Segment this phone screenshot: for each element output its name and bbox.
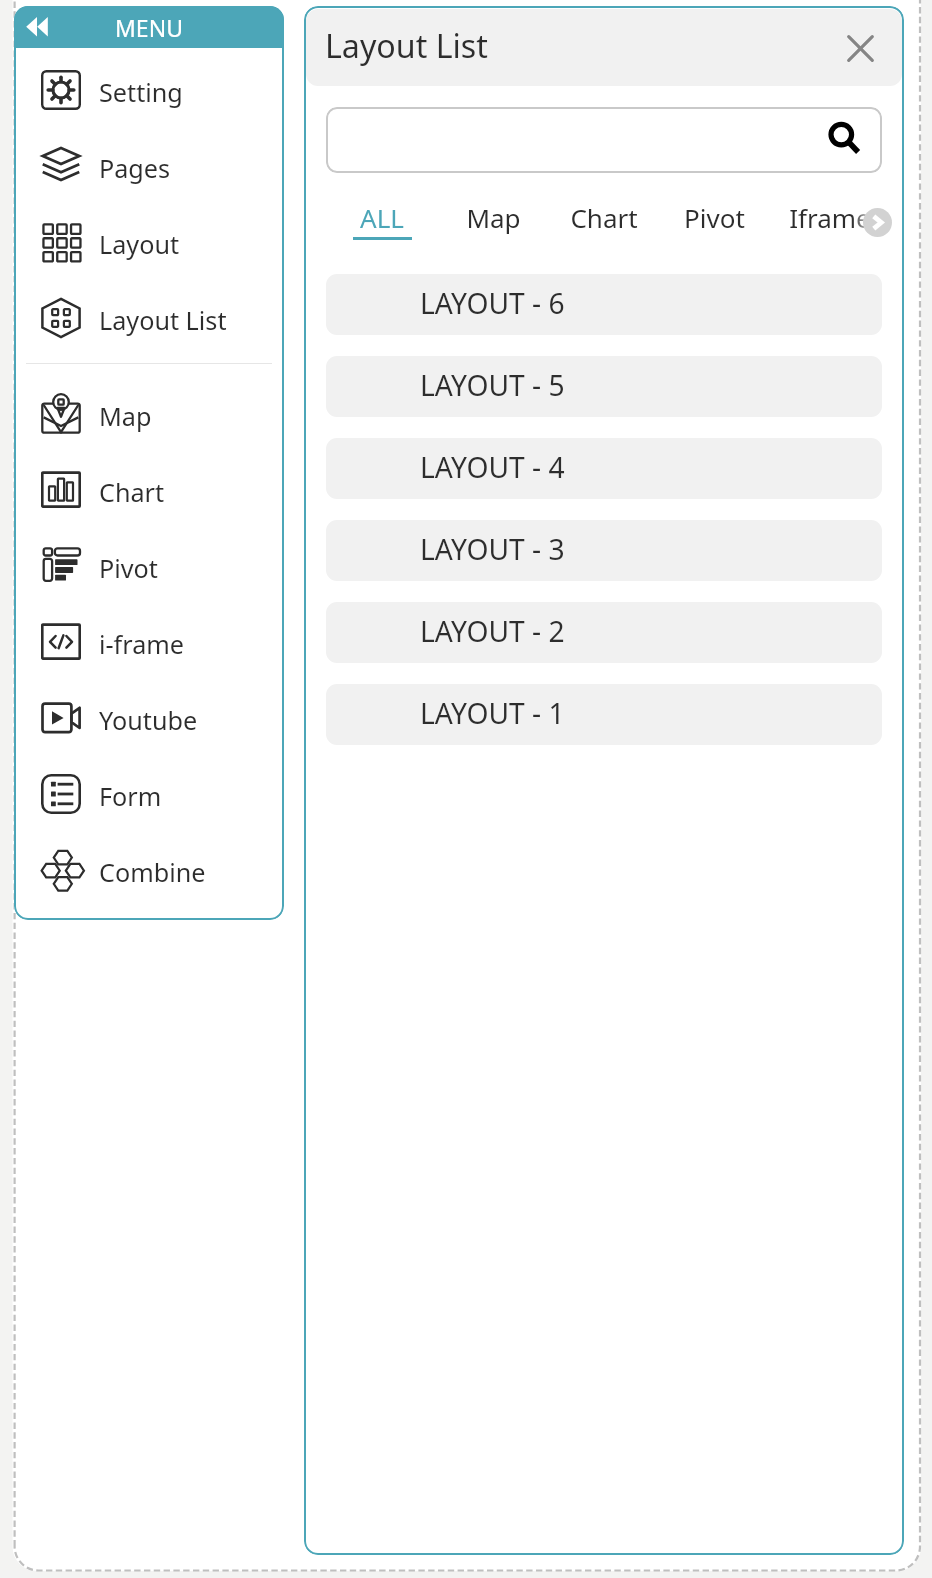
button[interactable]: LAYOUT - 2 xyxy=(326,602,882,663)
staticText: Pages xyxy=(99,151,171,185)
staticText: Layout List xyxy=(99,303,227,337)
button[interactable]: i-frame xyxy=(14,604,284,680)
staticText: Chart xyxy=(570,200,638,235)
button[interactable]: More tabs xyxy=(863,208,892,237)
staticText: MENU xyxy=(115,12,183,43)
staticText: ALL xyxy=(360,200,404,235)
staticText: Iframe xyxy=(789,200,871,235)
staticText: Layout List xyxy=(325,24,488,68)
button[interactable]: Setting xyxy=(14,52,284,128)
button[interactable]: Pivot xyxy=(674,198,754,244)
staticText: Pivot xyxy=(99,551,158,585)
button[interactable]: Iframe xyxy=(782,198,878,244)
staticText: LAYOUT - 5 xyxy=(420,366,565,404)
staticText: i-frame xyxy=(99,627,185,661)
button[interactable]: Layout xyxy=(14,204,284,280)
staticText: Chart xyxy=(99,475,165,509)
button[interactable]: Chart xyxy=(562,198,646,244)
staticText: Setting xyxy=(99,75,183,109)
staticText: Youtube xyxy=(99,703,198,737)
button[interactable]: Search xyxy=(326,107,882,173)
staticText: LAYOUT - 3 xyxy=(420,530,565,568)
button[interactable]: Pivot xyxy=(14,528,284,604)
staticText: LAYOUT - 1 xyxy=(420,694,565,732)
button[interactable]: LAYOUT - 6 xyxy=(326,274,882,335)
button[interactable]: Map xyxy=(14,376,284,452)
button[interactable]: Layout List xyxy=(14,280,284,356)
button[interactable]: LAYOUT - 4 xyxy=(326,438,882,499)
button[interactable]: LAYOUT - 3 xyxy=(326,520,882,581)
staticText: Map xyxy=(99,399,152,433)
button[interactable]: Chart xyxy=(14,452,284,528)
staticText: LAYOUT - 2 xyxy=(420,612,565,650)
button[interactable]: LAYOUT - 5 xyxy=(326,356,882,417)
staticText: LAYOUT - 6 xyxy=(420,284,565,322)
button[interactable]: Form xyxy=(14,756,284,832)
staticText: Pivot xyxy=(684,200,745,235)
button[interactable]: LAYOUT - 1 xyxy=(326,684,882,745)
staticText: LAYOUT - 4 xyxy=(420,448,565,486)
button[interactable]: Pages xyxy=(14,128,284,204)
button[interactable]: Youtube xyxy=(14,680,284,756)
other: Search xyxy=(828,121,861,154)
staticText: Map xyxy=(466,200,521,235)
button[interactable]: ALL xyxy=(345,198,419,244)
staticText: Layout xyxy=(99,227,180,261)
button[interactable]: Combine xyxy=(14,832,284,908)
staticText: Combine xyxy=(99,855,206,889)
button[interactable]: Collapse menu xyxy=(23,13,51,41)
staticText: Form xyxy=(99,779,162,813)
button[interactable]: Map xyxy=(456,198,530,244)
button[interactable]: Close xyxy=(837,25,883,71)
